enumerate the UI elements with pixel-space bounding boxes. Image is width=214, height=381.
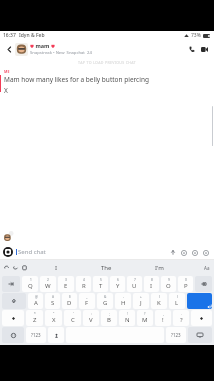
button[interactable]: " — [45, 310, 62, 326]
button[interactable]: Gallery — [189, 247, 200, 258]
button[interactable]: Shift — [2, 293, 26, 309]
button[interactable]: ?123 — [166, 327, 186, 343]
button[interactable]: Move cursor left — [2, 310, 24, 326]
staticText: 8 — [151, 278, 153, 282]
button[interactable]: Clipboard — [21, 264, 28, 271]
button[interactable]: Voice input — [48, 327, 64, 343]
staticText: 16:37 — [3, 32, 16, 39]
button[interactable]: Game — [200, 247, 211, 258]
button[interactable]: 0 — [178, 276, 193, 292]
button[interactable]: @ — [28, 293, 43, 309]
button[interactable]: Backspace — [195, 276, 212, 292]
button[interactable]: 4 — [76, 276, 91, 292]
button[interactable]: I'm — [151, 262, 168, 274]
button[interactable]: 7 — [127, 276, 142, 292]
button[interactable]: Redo — [12, 264, 19, 271]
staticText: N — [125, 316, 130, 324]
staticText: Y — [116, 282, 120, 290]
staticText: T — [99, 282, 103, 290]
button[interactable]: ?123 — [26, 327, 46, 343]
staticText: D — [67, 299, 72, 307]
staticText: ! — [162, 316, 164, 324]
button[interactable]: 3 — [58, 276, 74, 292]
staticText: - — [123, 295, 125, 299]
staticText: G — [103, 299, 108, 307]
button[interactable]: ? — [137, 310, 153, 326]
staticText: ?123 — [31, 332, 41, 338]
staticText: , — [163, 312, 164, 316]
button[interactable]: , — [155, 310, 171, 326]
staticText: & — [104, 295, 107, 299]
button[interactable]: : — [83, 310, 99, 326]
button[interactable]: Bitmoji sticker — [3, 231, 14, 242]
button[interactable]: Undo — [3, 264, 10, 271]
button[interactable]: 6 — [110, 276, 125, 292]
button[interactable]: Text style — [203, 264, 211, 272]
button[interactable]: 8 — [144, 276, 159, 292]
staticText: @ — [35, 295, 38, 299]
button[interactable]: 2 — [40, 276, 56, 292]
staticText: 9 — [168, 278, 170, 282]
button[interactable]: Call — [186, 43, 198, 55]
staticText: * — [34, 312, 36, 316]
button[interactable]: * — [26, 310, 43, 326]
button[interactable]: Back — [4, 44, 14, 54]
staticText: . — [181, 312, 182, 316]
button[interactable]: $ — [62, 293, 77, 309]
staticText: ( — [159, 295, 160, 299]
button[interactable]: - — [115, 293, 131, 309]
staticText: ! — [127, 312, 128, 316]
button[interactable]: Video call — [198, 43, 210, 55]
staticText: I — [150, 282, 153, 290]
staticText: E — [64, 282, 68, 290]
button[interactable]: ' — [64, 310, 81, 326]
staticText: V — [89, 316, 93, 324]
button[interactable]: Move cursor right — [191, 310, 212, 326]
button[interactable]: ! — [119, 310, 135, 326]
button[interactable]: 9 — [161, 276, 176, 292]
staticText: Idyn & Feb — [19, 32, 45, 39]
staticText: Q — [28, 282, 33, 290]
staticText: 4 — [83, 278, 85, 282]
button[interactable]: Hide keyboard — [188, 327, 212, 343]
button[interactable]: Emoji — [2, 327, 24, 343]
staticText: J — [140, 299, 142, 307]
button[interactable]: & — [97, 293, 113, 309]
staticText: mam — [34, 42, 51, 49]
staticText: " — [53, 312, 55, 316]
button[interactable]: Tab — [2, 276, 20, 292]
staticText: 0 — [185, 278, 187, 282]
staticText: ; — [109, 312, 110, 316]
staticText: Z — [33, 316, 37, 324]
staticText: ? — [144, 312, 146, 316]
staticText: L — [175, 299, 179, 307]
staticText: The — [101, 264, 112, 272]
button[interactable]: ; — [101, 310, 117, 326]
button[interactable]: Voice note — [167, 247, 178, 258]
staticText: I'm — [155, 264, 164, 272]
staticText: F — [85, 299, 89, 307]
button[interactable]: + — [133, 293, 149, 309]
staticText: B — [107, 316, 111, 324]
button[interactable]: ( — [151, 293, 167, 309]
button[interactable]: The — [97, 262, 116, 274]
button[interactable]: 1 — [22, 276, 38, 292]
staticText: O — [166, 282, 171, 290]
button[interactable]: Enter — [187, 293, 212, 309]
button[interactable]: ) — [169, 293, 185, 309]
staticText: 6 — [117, 278, 119, 282]
staticText: + — [140, 295, 142, 299]
button[interactable]: Stickers — [178, 247, 189, 258]
button[interactable]: 5 — [93, 276, 108, 292]
button[interactable]: . — [173, 310, 189, 326]
button[interactable]: _ — [79, 293, 95, 309]
staticText: Snapstreak • New Snapchat 24 — [30, 50, 92, 56]
button[interactable]: Camera — [3, 247, 13, 257]
staticText: ? — [180, 316, 183, 324]
button[interactable]: Profile — [15, 43, 28, 56]
staticText: K — [157, 299, 161, 307]
staticText: U — [132, 282, 137, 290]
button[interactable]: # — [45, 293, 60, 309]
button[interactable]: I — [51, 262, 62, 274]
